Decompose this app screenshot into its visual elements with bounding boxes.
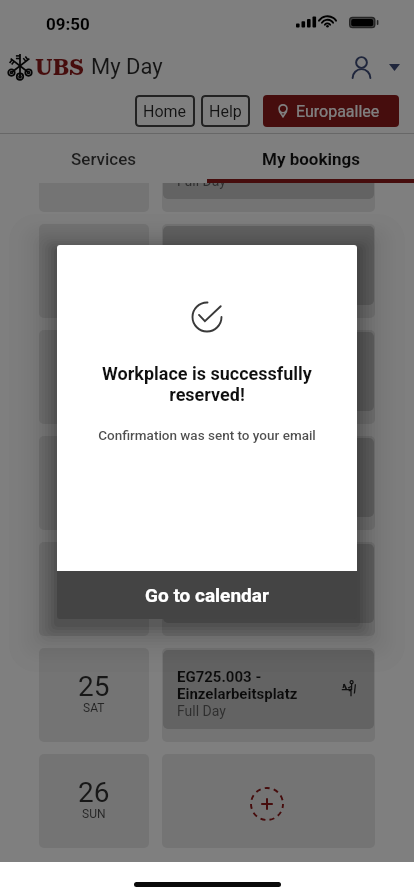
staticText: Einzelarbeitsplatz <box>177 685 298 703</box>
staticText: Einzelarbeitsplatz <box>177 367 298 385</box>
staticText: Confirmation was sent to your email <box>98 427 316 443</box>
staticText: Help <box>209 102 242 121</box>
button[interactable]: Account <box>342 48 380 86</box>
button[interactable]: 26 <box>39 754 149 848</box>
button[interactable]: EG725.003 - <box>163 438 374 517</box>
button[interactable]: 23 <box>39 436 149 530</box>
button[interactable]: EG725.003 - <box>163 183 374 199</box>
button[interactable]: Europaallee <box>263 95 399 127</box>
button[interactable]: EG725.003 - <box>163 650 374 729</box>
staticText: My bookings <box>262 149 360 169</box>
staticText: Go to calendar <box>145 584 269 606</box>
staticText: EG725.003 - <box>177 562 262 580</box>
staticText: UBS <box>35 54 84 81</box>
staticText: 09:50 <box>46 14 90 34</box>
staticText: Full Day <box>177 385 226 401</box>
staticText: Services <box>71 149 137 169</box>
staticText: 25 <box>78 670 110 703</box>
staticText: Home <box>143 102 187 121</box>
staticText: 24 <box>78 564 110 597</box>
button[interactable]: Help <box>201 95 250 127</box>
button[interactable]: My bookings <box>207 134 414 183</box>
button[interactable]: Go to calendar <box>57 571 357 619</box>
button[interactable]: Home <box>135 95 195 127</box>
staticText: SUN <box>82 807 106 821</box>
button[interactable]: Add booking <box>162 754 375 848</box>
staticText: EG725.003 - <box>177 350 262 368</box>
staticText: Full Day <box>177 183 226 189</box>
staticText: 22 <box>78 352 110 385</box>
button[interactable]: 21 <box>39 224 149 318</box>
button[interactable]: EG725.003 - <box>163 332 374 411</box>
staticText: EG725.003 - <box>177 668 262 686</box>
staticText: Einzelarbeitsplatz <box>177 579 298 597</box>
button[interactable]: Services <box>0 134 207 183</box>
staticText: 26 <box>78 776 110 809</box>
staticText: SAT <box>83 701 105 715</box>
button[interactable]: 24 <box>39 542 149 636</box>
staticText: EG725.003 - <box>177 244 262 262</box>
button[interactable]: EG725.003 - <box>163 544 374 623</box>
button[interactable]: More options <box>382 55 406 79</box>
staticText: Workplace is successfully reserved! <box>77 363 337 405</box>
staticText: Europaallee <box>296 102 380 121</box>
staticText: Full Day <box>177 597 226 613</box>
button[interactable]: 25 <box>39 648 149 742</box>
button[interactable]: 22 <box>39 330 149 424</box>
button[interactable]: EG725.003 - <box>163 226 374 305</box>
staticText: My Day <box>91 54 163 80</box>
staticText: Full Day <box>177 703 226 719</box>
